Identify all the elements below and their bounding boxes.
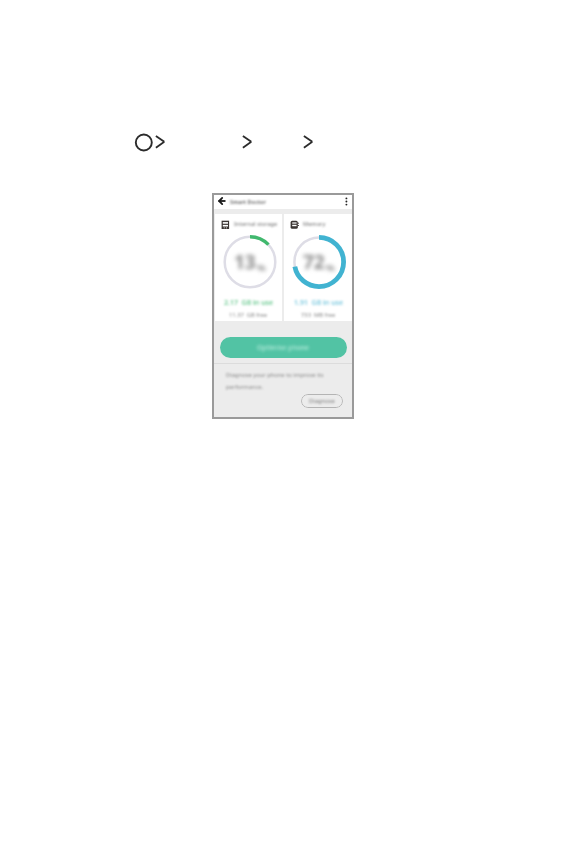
staticText: Diagnose <box>309 397 335 405</box>
staticText: % <box>257 261 266 274</box>
staticText: Memory <box>303 220 326 228</box>
staticText: 72 <box>303 249 325 275</box>
staticText: 733 MB free <box>301 311 336 319</box>
staticText: 2.17 GB in use <box>224 298 273 308</box>
button[interactable]: Memory <box>284 214 352 321</box>
staticText: 11.37 GB free <box>229 311 268 319</box>
staticText: Internal storage <box>234 220 278 228</box>
button[interactable]: Back <box>216 195 228 207</box>
button[interactable]: More options <box>340 195 352 207</box>
button[interactable]: Internal storage <box>215 214 282 321</box>
staticText: 13 <box>234 249 256 275</box>
staticText: Diagnose your phone to improve its perfo… <box>226 371 324 390</box>
button[interactable]: Optimise phone <box>220 337 347 358</box>
staticText: % <box>326 261 335 274</box>
staticText: Optimise phone <box>257 343 310 352</box>
staticText: Smart Doctor <box>230 198 266 205</box>
button[interactable]: Home <box>134 132 154 152</box>
staticText: 1.91 GB in use <box>294 298 343 308</box>
button[interactable]: Diagnose <box>301 394 343 408</box>
